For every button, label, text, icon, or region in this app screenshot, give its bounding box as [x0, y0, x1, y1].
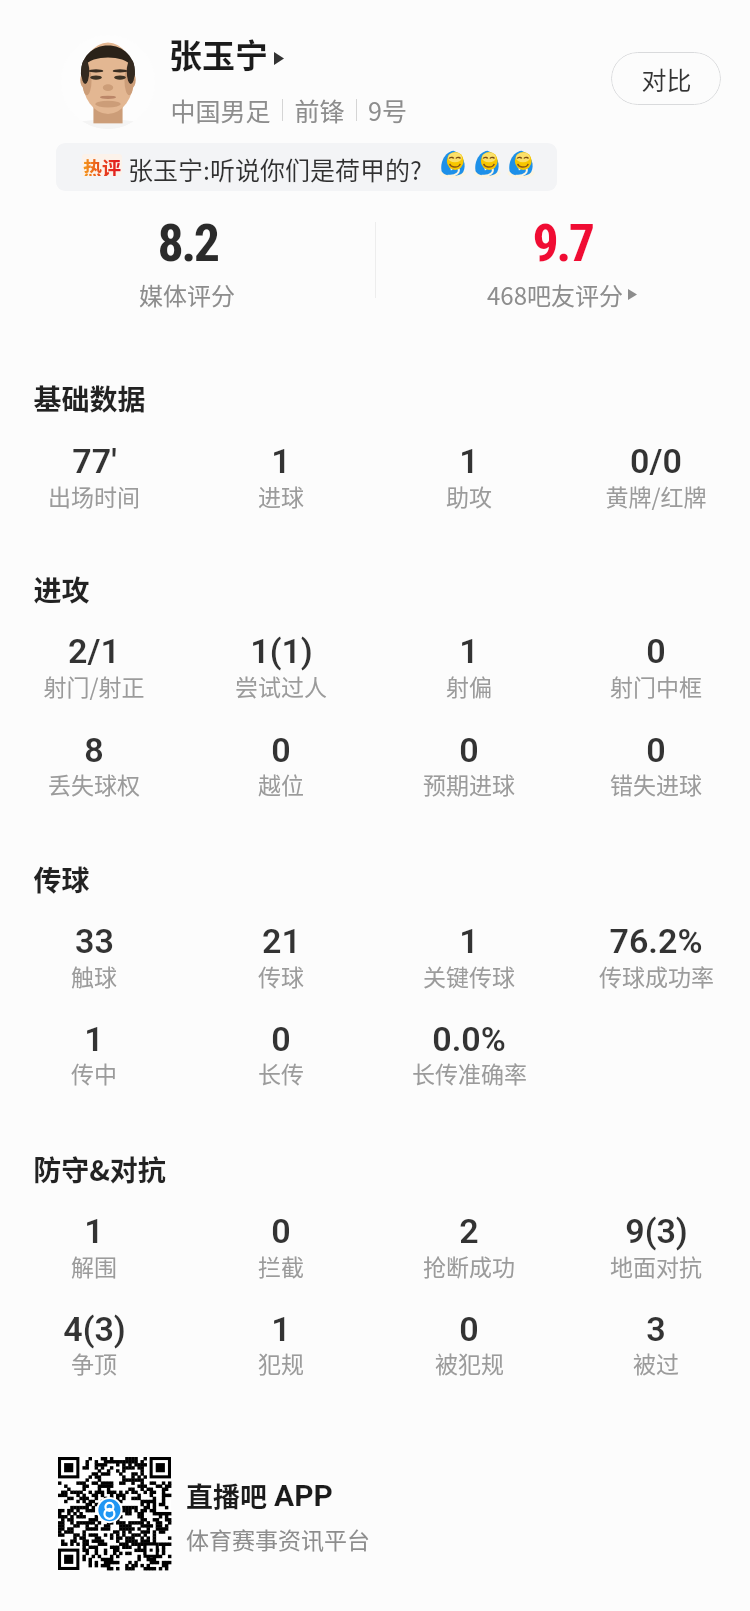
staticText: 3 — [646, 1309, 666, 1349]
button[interactable] — [563, 1199, 749, 1283]
staticText: 8 — [84, 730, 104, 770]
staticText: 争顶 — [71, 1346, 117, 1379]
staticText: 抢断成功 — [423, 1249, 515, 1282]
staticText: 进球 — [258, 479, 304, 512]
button[interactable] — [188, 718, 374, 801]
staticText: 媒体评分 — [139, 277, 235, 312]
staticText: 1(1) — [250, 631, 313, 671]
staticText: 被犯规 — [435, 1346, 504, 1379]
staticText: 9.7 — [532, 213, 593, 274]
staticText: 关键传球 — [423, 959, 515, 992]
staticText: 传球 — [33, 859, 90, 900]
button[interactable] — [469, 208, 655, 312]
staticText: 0.0% — [432, 1019, 506, 1059]
staticText: 传球成功率 — [599, 959, 714, 992]
button[interactable] — [1, 1007, 187, 1090]
button[interactable] — [563, 1297, 749, 1380]
button[interactable] — [563, 909, 749, 993]
staticText: 1 — [459, 441, 479, 481]
button[interactable] — [563, 429, 749, 513]
staticText: 长传准确率 — [412, 1056, 527, 1089]
staticText: 触球 — [71, 959, 117, 992]
staticText: 0/0 — [630, 441, 682, 481]
staticText: 尝试过人 — [235, 669, 327, 702]
staticText: 77' — [72, 441, 117, 481]
button[interactable] — [55, 24, 475, 134]
staticText: 33 — [75, 921, 114, 961]
staticText: 0 — [459, 1309, 479, 1349]
button[interactable] — [1, 718, 187, 801]
staticText: 4(3) — [63, 1309, 126, 1349]
button[interactable] — [376, 1199, 562, 1283]
button[interactable] — [376, 718, 562, 801]
other: Player photo — [61, 35, 155, 129]
staticText: 射门中框 — [610, 669, 702, 702]
staticText: 9号 — [368, 92, 407, 128]
button[interactable] — [1, 1199, 187, 1283]
staticText: APP — [274, 1478, 333, 1513]
staticText: 越位 — [258, 767, 304, 800]
staticText: 体育赛事资讯平台 — [186, 1522, 370, 1555]
button[interactable] — [188, 429, 374, 513]
staticText: 中国男足 — [170, 92, 271, 128]
staticText: 21 — [262, 921, 301, 961]
staticText: 黄牌/红牌 — [605, 479, 707, 512]
button[interactable] — [188, 619, 374, 703]
staticText: 8.2 — [157, 213, 218, 274]
button[interactable]: 对比 — [611, 52, 721, 105]
button[interactable] — [563, 718, 749, 801]
staticText: 错失进球 — [610, 767, 702, 800]
staticText: 预期进球 — [423, 767, 515, 800]
staticText: 0 — [646, 730, 666, 770]
button[interactable] — [188, 1199, 374, 1283]
button[interactable] — [376, 1007, 562, 1090]
button[interactable] — [1, 429, 187, 513]
button[interactable] — [188, 1297, 374, 1380]
button[interactable] — [94, 208, 280, 312]
staticText: 地面对抗 — [610, 1249, 702, 1282]
staticText: 0 — [271, 730, 291, 770]
staticText: 1 — [84, 1211, 104, 1251]
staticText: 热评 — [83, 154, 122, 176]
staticText: 1 — [459, 631, 479, 671]
button[interactable] — [188, 909, 374, 993]
staticText: 拦截 — [258, 1249, 304, 1282]
button[interactable] — [376, 1297, 562, 1380]
staticText: 出场时间 — [48, 479, 140, 512]
staticText: 助攻 — [446, 479, 492, 512]
staticText: 2/1 — [68, 631, 120, 671]
staticText: 1 — [271, 441, 291, 481]
staticText: 传中 — [71, 1056, 117, 1089]
staticText: 0 — [271, 1019, 291, 1059]
staticText: 0 — [459, 730, 479, 770]
button[interactable] — [188, 1007, 374, 1090]
staticText: 直播吧 — [186, 1476, 267, 1515]
staticText: 76.2% — [609, 921, 703, 961]
staticText: 被过 — [633, 1346, 679, 1379]
staticText: 张玉宁 — [169, 30, 268, 78]
staticText: 基础数据 — [33, 378, 146, 419]
staticText: 长传 — [258, 1056, 304, 1089]
button[interactable] — [376, 429, 562, 513]
staticText: 1 — [271, 1309, 291, 1349]
staticText: 对比 — [641, 61, 692, 97]
staticText: 射门/射正 — [43, 669, 145, 702]
button[interactable] — [563, 619, 749, 703]
button[interactable] — [1, 1297, 187, 1380]
staticText: 进攻 — [33, 569, 90, 610]
button[interactable] — [1, 909, 187, 993]
other: Open player page — [274, 52, 284, 65]
button[interactable] — [56, 143, 557, 191]
staticText: 张玉宁:听说你们是荷甲的? — [128, 151, 422, 187]
other: Download the app QR code — [58, 1457, 171, 1570]
staticText: 468吧友评分 — [487, 277, 623, 312]
staticText: 1 — [84, 1019, 104, 1059]
button[interactable] — [376, 909, 562, 993]
staticText: 前锋 — [294, 92, 345, 128]
button[interactable] — [376, 619, 562, 703]
staticText: 射偏 — [446, 669, 492, 702]
button[interactable] — [1, 619, 187, 703]
staticText: 0 — [646, 631, 666, 671]
button[interactable] — [55, 1450, 385, 1578]
staticText: 犯规 — [258, 1346, 304, 1379]
